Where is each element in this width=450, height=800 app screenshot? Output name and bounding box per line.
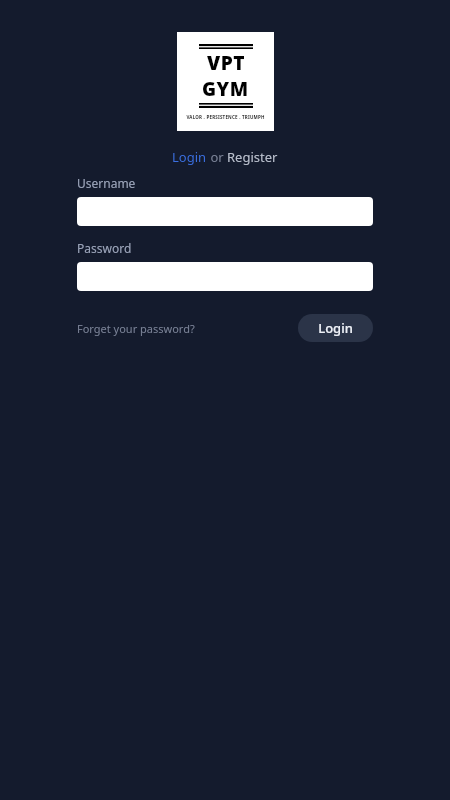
staticText: Password: [77, 240, 132, 256]
button[interactable]: [77, 262, 373, 291]
staticText: or: [207, 148, 227, 166]
staticText: VPT: [207, 50, 245, 76]
button[interactable]: Forget your password?: [77, 319, 195, 338]
staticText: Login: [318, 319, 353, 337]
button[interactable]: Login: [298, 314, 373, 342]
button[interactable]: [77, 197, 373, 226]
button[interactable]: Register: [227, 148, 278, 166]
staticText: GYM: [202, 76, 249, 102]
button[interactable]: Login: [172, 148, 207, 166]
staticText: Forget your password?: [77, 321, 195, 336]
staticText: Register: [227, 148, 278, 166]
staticText: Login: [172, 148, 207, 166]
staticText: Username: [77, 175, 136, 191]
staticText: VALOR . PERSISTENCE . TRIUMPH: [186, 114, 265, 120]
